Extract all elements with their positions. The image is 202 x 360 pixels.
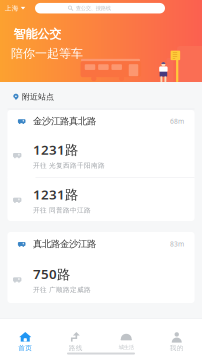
- staticText: 附近站点: [22, 92, 54, 102]
- staticText: 城生活: [119, 344, 134, 351]
- staticText: 开往 广顺路定威路: [33, 286, 91, 294]
- button[interactable]: 查公交、搜路线: [35, 3, 165, 13]
- button[interactable]: 1231路: [7, 178, 194, 222]
- staticText: 83m: [170, 240, 184, 248]
- staticText: 750路: [33, 265, 70, 283]
- button[interactable]: 上海: [2, 1, 28, 15]
- staticText: 查公交、搜路线: [76, 5, 111, 11]
- button[interactable]: 金沙江路真北路: [7, 109, 194, 133]
- staticText: 真北路金沙江路: [33, 238, 96, 250]
- staticText: 1231路: [33, 185, 78, 203]
- staticText: 68m: [170, 117, 184, 126]
- button[interactable]: 城生活: [101, 318, 151, 360]
- button[interactable]: 真北路金沙江路: [7, 232, 194, 256]
- staticText: 陪你一起等车: [11, 46, 83, 61]
- button[interactable]: 我的: [151, 318, 202, 360]
- button[interactable]: 路线: [50, 318, 101, 360]
- staticText: 首页: [18, 344, 32, 352]
- staticText: 路线: [69, 344, 83, 352]
- button[interactable]: 首页: [0, 318, 50, 360]
- staticText: 我的: [170, 344, 184, 352]
- staticText: 开往 同普路中江路: [33, 206, 91, 214]
- button[interactable]: 1231路: [7, 133, 194, 177]
- staticText: 上海: [5, 4, 19, 12]
- staticText: 1231路: [33, 141, 78, 158]
- button[interactable]: 750路: [7, 256, 194, 303]
- staticText: 开往 光复西路千阳南路: [33, 161, 105, 170]
- staticText: 金沙江路真北路: [33, 115, 96, 127]
- staticText: 智能公交: [13, 27, 61, 41]
